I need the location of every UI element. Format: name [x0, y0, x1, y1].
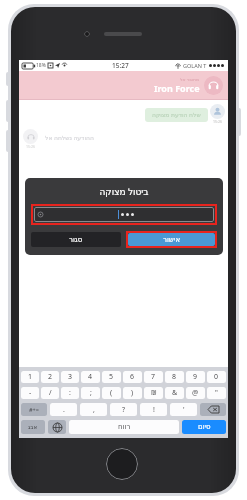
staticText: אישור — [163, 236, 181, 244]
button[interactable]: 8 — [165, 371, 184, 383]
button[interactable]: סיום — [182, 420, 226, 434]
button[interactable]: 1 — [21, 371, 39, 383]
button[interactable]: סגור — [31, 232, 121, 247]
staticText: ההודעה נשלחה אל — [45, 134, 94, 142]
button[interactable]: 4 — [81, 371, 100, 383]
staticText: 9 — [193, 372, 198, 382]
staticText: מחובר אל — [180, 76, 200, 82]
staticText: שלח הודעת מצוקה — [152, 111, 201, 119]
button[interactable]: אבג — [21, 420, 45, 434]
staticText: 15:26 — [26, 144, 35, 149]
staticText: 7 — [151, 372, 156, 382]
staticText: 15:26 — [213, 119, 222, 124]
button[interactable]: שלח הודעת מצוקה — [152, 111, 201, 119]
button[interactable]: ' — [170, 403, 197, 416]
staticText: 4 — [88, 372, 93, 382]
staticText: GOLAN T — [183, 62, 207, 69]
button[interactable]: 3 — [61, 371, 79, 383]
staticText: ( — [110, 388, 113, 398]
button[interactable]: Change language — [48, 420, 66, 434]
button[interactable]: אישור — [128, 233, 215, 246]
button[interactable]: 0 — [207, 371, 226, 383]
button[interactable]: ) — [123, 387, 142, 399]
staticText: 5 — [109, 372, 114, 382]
button[interactable]: " — [207, 387, 226, 399]
button[interactable]: רווח — [69, 420, 179, 434]
staticText: ! — [153, 405, 155, 415]
button[interactable]: , — [80, 403, 107, 416]
button[interactable]: 9 — [186, 371, 205, 383]
staticText: ? — [122, 405, 126, 415]
button[interactable]: Home — [106, 448, 138, 480]
staticText: - — [29, 388, 32, 398]
button[interactable]: Backspace — [200, 403, 226, 416]
staticText: #+= — [29, 406, 39, 413]
staticText: סגור — [69, 236, 83, 244]
staticText: 18% — [36, 62, 46, 69]
staticText: : — [69, 388, 71, 398]
button[interactable]: - — [21, 387, 39, 399]
button[interactable]: #+= — [21, 403, 47, 416]
staticText: 1 — [28, 372, 33, 382]
staticText: , — [93, 405, 95, 415]
button[interactable]: @ — [186, 387, 205, 399]
button[interactable]: : — [61, 387, 79, 399]
button[interactable]: ₪ — [144, 387, 163, 399]
button[interactable]: ? — [110, 403, 137, 416]
staticText: 6 — [130, 372, 135, 382]
staticText: @ — [192, 388, 199, 398]
button[interactable]: . — [50, 403, 77, 416]
staticText: & — [172, 388, 178, 398]
staticText: 2 — [48, 372, 53, 382]
staticText: ₪ — [151, 388, 157, 398]
button[interactable]: 7 — [144, 371, 163, 383]
button[interactable]: 6 — [123, 371, 142, 383]
staticText: ביטול מצוקה — [99, 185, 149, 197]
button[interactable]: 5 — [102, 371, 121, 383]
button[interactable]: ( — [102, 387, 121, 399]
staticText: . — [63, 405, 65, 415]
staticText: אבג — [28, 424, 38, 430]
staticText: 3 — [68, 372, 73, 382]
button[interactable]: Profile — [204, 76, 223, 95]
staticText: רווח — [118, 423, 131, 431]
staticText: Iron Force — [154, 82, 200, 94]
button[interactable]: 2 — [41, 371, 59, 383]
button[interactable] — [38, 207, 210, 222]
staticText: סיום — [198, 423, 211, 431]
button[interactable]: ! — [140, 403, 167, 416]
staticText: 15:27 — [112, 61, 129, 70]
button[interactable]: / — [41, 387, 59, 399]
button[interactable]: & — [165, 387, 184, 399]
staticText: / — [49, 388, 52, 398]
staticText: ) — [131, 388, 134, 398]
staticText: 8 — [172, 372, 177, 382]
button[interactable]: ; — [81, 387, 100, 399]
staticText: ' — [183, 405, 185, 415]
staticText: ; — [90, 388, 92, 398]
staticText: " — [215, 388, 218, 398]
staticText: 0 — [214, 372, 219, 382]
